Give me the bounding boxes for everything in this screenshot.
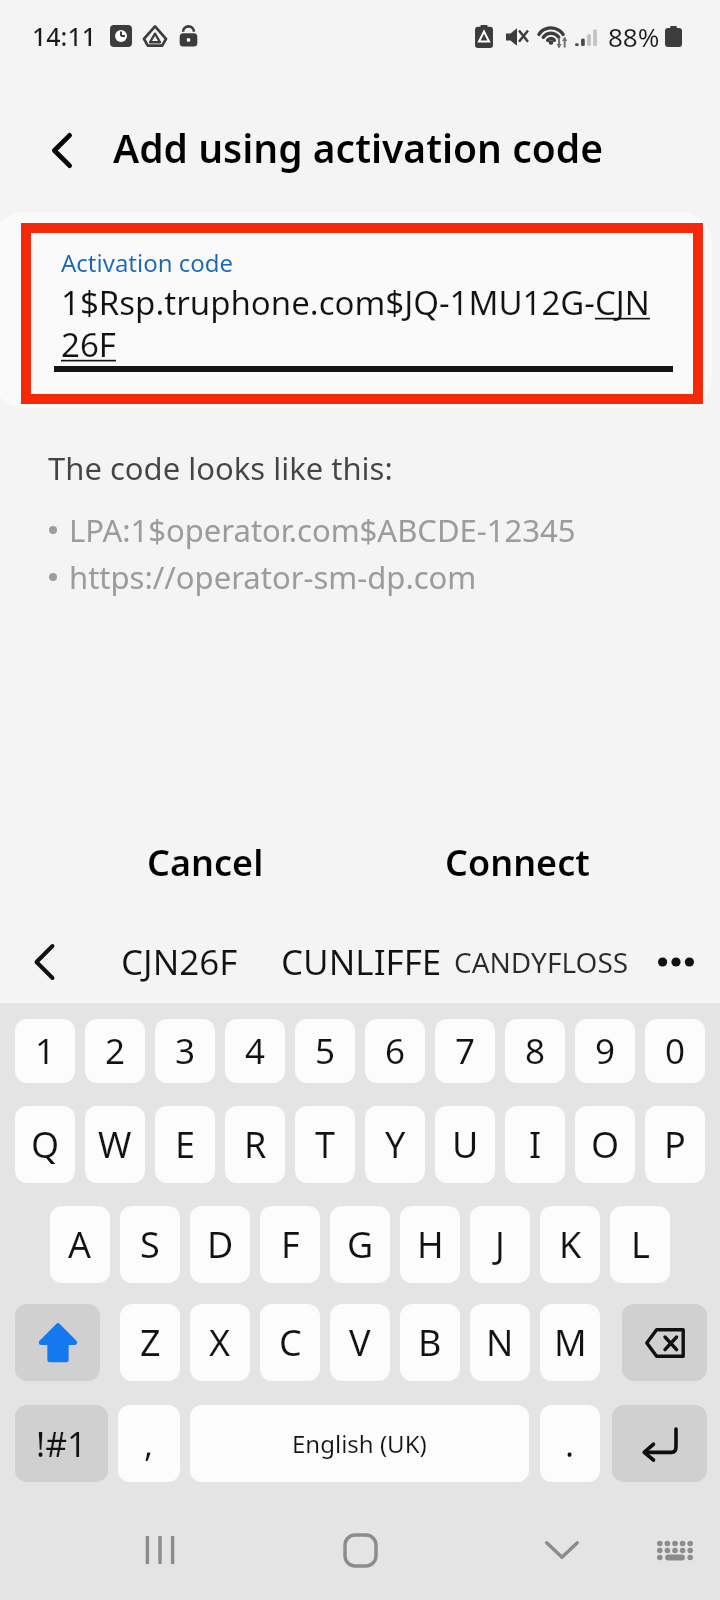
button[interactable]: A bbox=[50, 1206, 110, 1283]
staticText: 6 bbox=[385, 1027, 406, 1075]
button[interactable]: C bbox=[260, 1304, 320, 1381]
button[interactable]: 4 bbox=[225, 1019, 285, 1083]
button[interactable]: Q bbox=[15, 1106, 75, 1183]
button[interactable]: L bbox=[610, 1206, 670, 1283]
staticText: . bbox=[565, 1421, 575, 1467]
staticText: H bbox=[417, 1220, 444, 1269]
button[interactable]: Backspace bbox=[622, 1304, 707, 1381]
staticText: 4 bbox=[245, 1027, 266, 1075]
button[interactable]: Enter bbox=[612, 1405, 707, 1482]
button[interactable]: 6 bbox=[365, 1019, 425, 1083]
staticText: W bbox=[98, 1120, 132, 1169]
button[interactable]: 5 bbox=[295, 1019, 355, 1083]
button[interactable]: T bbox=[295, 1106, 355, 1183]
button[interactable]: CJN26F bbox=[96, 919, 262, 1005]
button[interactable]: U bbox=[435, 1106, 495, 1183]
button[interactable]: Home bbox=[300, 1500, 420, 1600]
staticText: 2 bbox=[105, 1027, 126, 1075]
button[interactable]: W bbox=[85, 1106, 145, 1183]
staticText: B bbox=[418, 1318, 442, 1367]
staticText: 5 bbox=[315, 1027, 336, 1075]
button[interactable]: K bbox=[540, 1206, 600, 1283]
button[interactable]: 9 bbox=[575, 1019, 635, 1083]
button[interactable]: !#1 bbox=[15, 1405, 108, 1482]
button[interactable]: CANDYFLOSS bbox=[450, 919, 632, 1005]
staticText: 26F bbox=[61, 322, 116, 367]
staticText: Add using activation code bbox=[113, 121, 603, 174]
button[interactable]: G bbox=[330, 1206, 390, 1283]
button[interactable]: 2 bbox=[85, 1019, 145, 1083]
button[interactable]: R bbox=[225, 1106, 285, 1183]
button[interactable]: S bbox=[120, 1206, 180, 1283]
staticText: E bbox=[175, 1120, 196, 1169]
button[interactable]: Shift bbox=[15, 1304, 100, 1381]
staticText: P bbox=[664, 1120, 686, 1169]
staticText: T bbox=[315, 1120, 336, 1169]
staticText: X bbox=[209, 1318, 231, 1367]
staticText: V bbox=[349, 1318, 371, 1367]
button[interactable]: I bbox=[505, 1106, 565, 1183]
staticText: L bbox=[631, 1220, 650, 1269]
staticText: J bbox=[495, 1220, 505, 1269]
staticText: The code looks like this: bbox=[48, 447, 393, 489]
button[interactable]: V bbox=[330, 1304, 390, 1381]
staticText: 88% bbox=[608, 19, 660, 54]
button[interactable]: J bbox=[470, 1206, 530, 1283]
staticText: Z bbox=[140, 1318, 161, 1367]
button[interactable]: 0 bbox=[645, 1019, 705, 1083]
button[interactable]: E bbox=[155, 1106, 215, 1183]
staticText: S bbox=[140, 1220, 160, 1269]
staticText: LPA:1$operator.com$ABCDE-12345 bbox=[69, 509, 576, 551]
staticText: 1$Rsp.truphone.com$JQ-1MU12G-CJN bbox=[61, 280, 720, 325]
button[interactable]: Cancel bbox=[110, 824, 300, 900]
button[interactable]: Recents bbox=[100, 1500, 220, 1600]
button[interactable]: 1 bbox=[15, 1019, 75, 1083]
button[interactable]: B bbox=[400, 1304, 460, 1381]
button[interactable]: Change keyboard bbox=[615, 1500, 720, 1600]
staticText: , bbox=[144, 1421, 154, 1467]
button[interactable]: Y bbox=[365, 1106, 425, 1183]
staticText: CJN26F bbox=[121, 938, 238, 986]
staticText: O bbox=[591, 1120, 620, 1169]
staticText: 1 bbox=[35, 1027, 56, 1075]
button[interactable]: P bbox=[645, 1106, 705, 1183]
staticText: A bbox=[68, 1220, 92, 1269]
staticText: F bbox=[281, 1220, 300, 1269]
button[interactable]: 7 bbox=[435, 1019, 495, 1083]
staticText: 14:11 bbox=[32, 19, 97, 53]
staticText: G bbox=[347, 1220, 374, 1269]
staticText: Y bbox=[385, 1120, 406, 1169]
button[interactable]: Z bbox=[120, 1304, 180, 1381]
staticText: M bbox=[554, 1318, 587, 1367]
button[interactable]: Hide keyboard bbox=[502, 1500, 622, 1600]
button[interactable]: , bbox=[118, 1405, 180, 1482]
button[interactable]: More suggestions bbox=[640, 919, 712, 1005]
button[interactable]: M bbox=[540, 1304, 600, 1381]
button[interactable]: Back bbox=[28, 116, 96, 184]
button[interactable]: 8 bbox=[505, 1019, 565, 1083]
staticText: D bbox=[207, 1220, 234, 1269]
button[interactable]: H bbox=[400, 1206, 460, 1283]
button[interactable]: O bbox=[575, 1106, 635, 1183]
staticText: CANDYFLOSS bbox=[454, 943, 629, 981]
button[interactable]: X bbox=[190, 1304, 250, 1381]
button[interactable]: English (UK) bbox=[190, 1405, 529, 1482]
button[interactable]: Previous suggestions bbox=[10, 928, 78, 996]
button[interactable]: N bbox=[470, 1304, 530, 1381]
staticText: K bbox=[559, 1220, 582, 1269]
button[interactable]: Connect bbox=[420, 824, 615, 900]
staticText: English (UK) bbox=[292, 1427, 427, 1460]
staticText: Activation code bbox=[61, 246, 234, 279]
staticText: I bbox=[529, 1120, 542, 1169]
button[interactable]: F bbox=[260, 1206, 320, 1283]
staticText: 7 bbox=[455, 1027, 476, 1075]
button[interactable]: D bbox=[190, 1206, 250, 1283]
staticText: R bbox=[244, 1120, 267, 1169]
staticText: U bbox=[452, 1120, 479, 1169]
button[interactable]: . bbox=[540, 1405, 600, 1482]
staticText: C bbox=[279, 1318, 302, 1367]
button[interactable]: 3 bbox=[155, 1019, 215, 1083]
staticText: CUNLIFFE bbox=[281, 938, 442, 986]
button[interactable]: CUNLIFFE bbox=[272, 919, 450, 1005]
staticText: !#1 bbox=[36, 1421, 87, 1467]
